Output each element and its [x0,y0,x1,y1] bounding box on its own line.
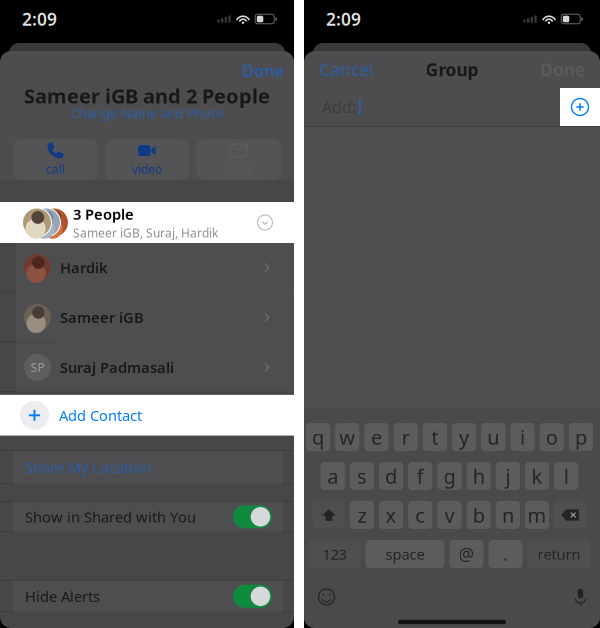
staticText: Add: [322,96,356,118]
button[interactable]: c [408,501,432,529]
button[interactable]: n [496,501,520,529]
staticText: s [357,463,367,489]
staticText: 123 [322,544,346,564]
staticText: video [132,161,162,177]
button[interactable]: a [321,462,345,490]
staticText: t [431,424,438,450]
staticText: Share My Location [25,458,151,477]
staticText: Done [540,58,585,81]
staticText: space [385,544,424,564]
staticText: Hide Alerts [25,587,100,606]
staticText: a [327,463,338,489]
staticText: f [417,463,424,489]
button[interactable]: g [437,462,462,490]
staticText: Done [242,60,283,81]
button[interactable]: space [365,540,444,568]
staticText: i [520,424,525,450]
staticText: . [503,542,508,565]
staticText: v [444,502,454,528]
button[interactable]: Sameer iGB [0,293,294,342]
staticText: q [312,424,324,450]
button[interactable]: j [496,462,520,490]
button[interactable]: p [569,423,593,451]
button[interactable]: Share My Location [0,451,294,484]
button[interactable]: s [350,462,374,490]
button[interactable]: Done [238,50,287,81]
button[interactable]: h [467,462,491,490]
button[interactable]: return [527,540,590,568]
button[interactable]: q [306,423,330,451]
staticText: 2:09 [326,7,361,30]
button[interactable]: Dictation [571,585,590,609]
staticText: g [443,463,455,489]
button[interactable]: Shift [313,501,345,529]
staticText: c [415,502,425,528]
button[interactable]: Add contact [560,88,600,126]
staticText: k [532,463,543,489]
staticText: Change Name and Photo [70,104,223,122]
button[interactable]: Emoji keyboard [314,584,339,609]
button[interactable]: 123 [308,540,360,568]
staticText: h [473,463,485,489]
staticText: Sameer iGB, Suraj, Hardik [73,225,218,241]
button[interactable]: Delete [554,501,586,529]
button[interactable]: Change Name and Photo [70,109,223,127]
staticText: @ [458,542,474,565]
staticText: y [459,424,469,450]
staticText: m [528,502,547,528]
button[interactable]: Cancel [319,54,373,85]
staticText: p [575,424,587,450]
staticText: l [564,463,569,489]
button[interactable]: SP [0,343,294,392]
button[interactable]: r [394,423,418,451]
button[interactable]: o [540,423,564,451]
staticText: return [537,544,580,564]
staticText: z [357,502,366,528]
button[interactable]: u [481,423,505,451]
button[interactable]: e [364,423,389,451]
button[interactable]: y [452,423,476,451]
button[interactable]: x [379,501,403,529]
button[interactable]: Done [540,54,585,85]
staticText: j [505,463,510,489]
staticText: Add Contact [59,406,142,425]
staticText: call [46,161,65,177]
button[interactable]: m [525,501,549,529]
staticText: u [487,424,499,450]
staticText: w [339,424,355,450]
button[interactable]: l [554,462,578,490]
staticText: Sameer iGB and 2 People [24,82,270,109]
button[interactable]: 3 People [0,202,294,243]
button[interactable]: Hardik [0,243,294,292]
button[interactable]: f [408,462,432,490]
button[interactable]: v [437,501,462,529]
staticText: 2:09 [22,7,57,30]
button[interactable]: call [13,139,98,180]
staticText: o [546,424,558,450]
button[interactable]: w [335,423,359,451]
staticText: Hardik [60,258,108,277]
staticText: Cancel [319,58,373,81]
button[interactable]: b [467,501,491,529]
staticText: 3 People [73,204,134,224]
staticText: Sameer iGB [60,308,144,327]
button[interactable]: @ [449,540,483,568]
staticText: Suraj Padmasali [60,358,174,377]
button[interactable]: t [423,423,447,451]
button[interactable]: Add Contact [0,395,294,436]
staticText: e [371,424,382,450]
button[interactable]: i [510,423,535,451]
staticText: Show in Shared with You [25,507,196,527]
button[interactable]: video [105,139,189,180]
button[interactable]: z [350,501,374,529]
button[interactable]: d [379,462,403,490]
staticText: n [502,502,514,528]
staticText: SP [30,359,44,375]
staticText: Group [425,58,478,81]
staticText: b [473,502,485,528]
button[interactable]: k [525,462,549,490]
staticText: r [402,424,410,450]
button[interactable]: . [488,540,522,568]
